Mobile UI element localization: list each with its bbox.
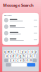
staticText: a bbox=[6, 54, 7, 58]
button[interactable] bbox=[2, 17, 39, 23]
staticText: o bbox=[31, 50, 33, 53]
button[interactable]: q bbox=[4, 50, 6, 53]
button[interactable]: p bbox=[35, 50, 37, 53]
button[interactable]: a bbox=[5, 54, 8, 58]
staticText: d bbox=[13, 54, 15, 58]
button[interactable]: g bbox=[19, 54, 22, 58]
button[interactable]: Numbers bbox=[6, 63, 11, 67]
button[interactable]: Search bbox=[27, 63, 35, 67]
button[interactable] bbox=[2, 36, 39, 43]
staticText: Message Search bbox=[3, 3, 34, 8]
button[interactable]: f bbox=[16, 54, 18, 58]
staticText: w bbox=[7, 50, 9, 53]
button[interactable]: d bbox=[12, 54, 15, 58]
staticText: l bbox=[34, 54, 35, 58]
button[interactable]: w bbox=[7, 50, 10, 53]
staticText: h bbox=[23, 54, 25, 58]
button[interactable]: z bbox=[9, 59, 12, 62]
staticText: t bbox=[18, 50, 19, 53]
staticText: b bbox=[23, 59, 25, 62]
staticText: m bbox=[30, 59, 32, 62]
button[interactable]: i bbox=[28, 50, 30, 53]
staticText: g bbox=[19, 54, 21, 58]
button[interactable]: t bbox=[17, 50, 20, 53]
staticText: p bbox=[35, 50, 37, 53]
staticText: q bbox=[4, 50, 6, 53]
staticText: v bbox=[20, 59, 21, 62]
staticText: y bbox=[22, 50, 23, 53]
staticText: Messages bbox=[4, 15, 12, 16]
button[interactable]: e bbox=[10, 50, 13, 53]
staticText: k bbox=[30, 54, 31, 58]
staticText: i bbox=[29, 50, 30, 53]
staticText: z bbox=[10, 59, 11, 62]
staticText: n bbox=[26, 59, 28, 62]
button[interactable]: Delete bbox=[33, 59, 37, 62]
button[interactable]: b bbox=[22, 59, 25, 62]
staticText: f bbox=[17, 54, 18, 58]
button[interactable]: n bbox=[26, 59, 29, 62]
staticText: x bbox=[13, 59, 14, 62]
button[interactable]: Shift bbox=[4, 59, 8, 62]
button[interactable]: j bbox=[26, 54, 29, 58]
button[interactable]: o bbox=[31, 50, 34, 53]
button[interactable]: r bbox=[14, 50, 17, 53]
staticText: s bbox=[10, 54, 11, 58]
staticText: e bbox=[11, 50, 13, 53]
button[interactable]: s bbox=[9, 54, 12, 58]
button[interactable]: space bbox=[11, 63, 27, 67]
button[interactable]: u bbox=[24, 50, 27, 53]
button[interactable]: c bbox=[16, 59, 18, 62]
button[interactable]: k bbox=[29, 54, 32, 58]
button[interactable]: h bbox=[22, 54, 25, 58]
staticText: c bbox=[17, 59, 18, 62]
button[interactable]: l bbox=[33, 54, 36, 58]
button[interactable]: x bbox=[12, 59, 15, 62]
button[interactable]: v bbox=[19, 59, 22, 62]
button[interactable]: m bbox=[29, 59, 32, 62]
button[interactable] bbox=[2, 30, 39, 36]
staticText: j bbox=[27, 54, 28, 58]
button[interactable]: y bbox=[21, 50, 24, 53]
staticText: u bbox=[25, 50, 27, 53]
button[interactable] bbox=[2, 23, 39, 30]
staticText: r bbox=[15, 50, 16, 53]
